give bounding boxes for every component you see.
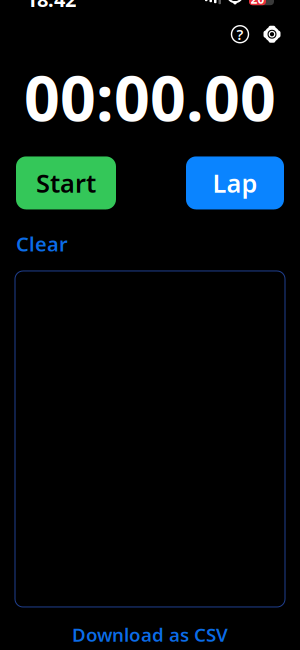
- staticText: ?: [236, 24, 243, 44]
- button[interactable]: Settings: [257, 19, 287, 49]
- button[interactable]: Lap: [186, 156, 284, 209]
- staticText: Clear: [16, 230, 68, 257]
- button[interactable]: Clear: [16, 226, 68, 261]
- staticText: 00:00.00: [24, 55, 276, 138]
- staticText: 20: [250, 0, 264, 7]
- staticText: Download as CSV: [72, 622, 228, 647]
- button[interactable]: Start: [16, 156, 116, 209]
- staticText: Lap: [212, 166, 257, 200]
- staticText: Start: [36, 166, 96, 200]
- staticText: 18:42: [26, 0, 76, 13]
- button[interactable]: Download as CSV: [0, 616, 300, 650]
- button[interactable]: Help: [225, 19, 255, 49]
